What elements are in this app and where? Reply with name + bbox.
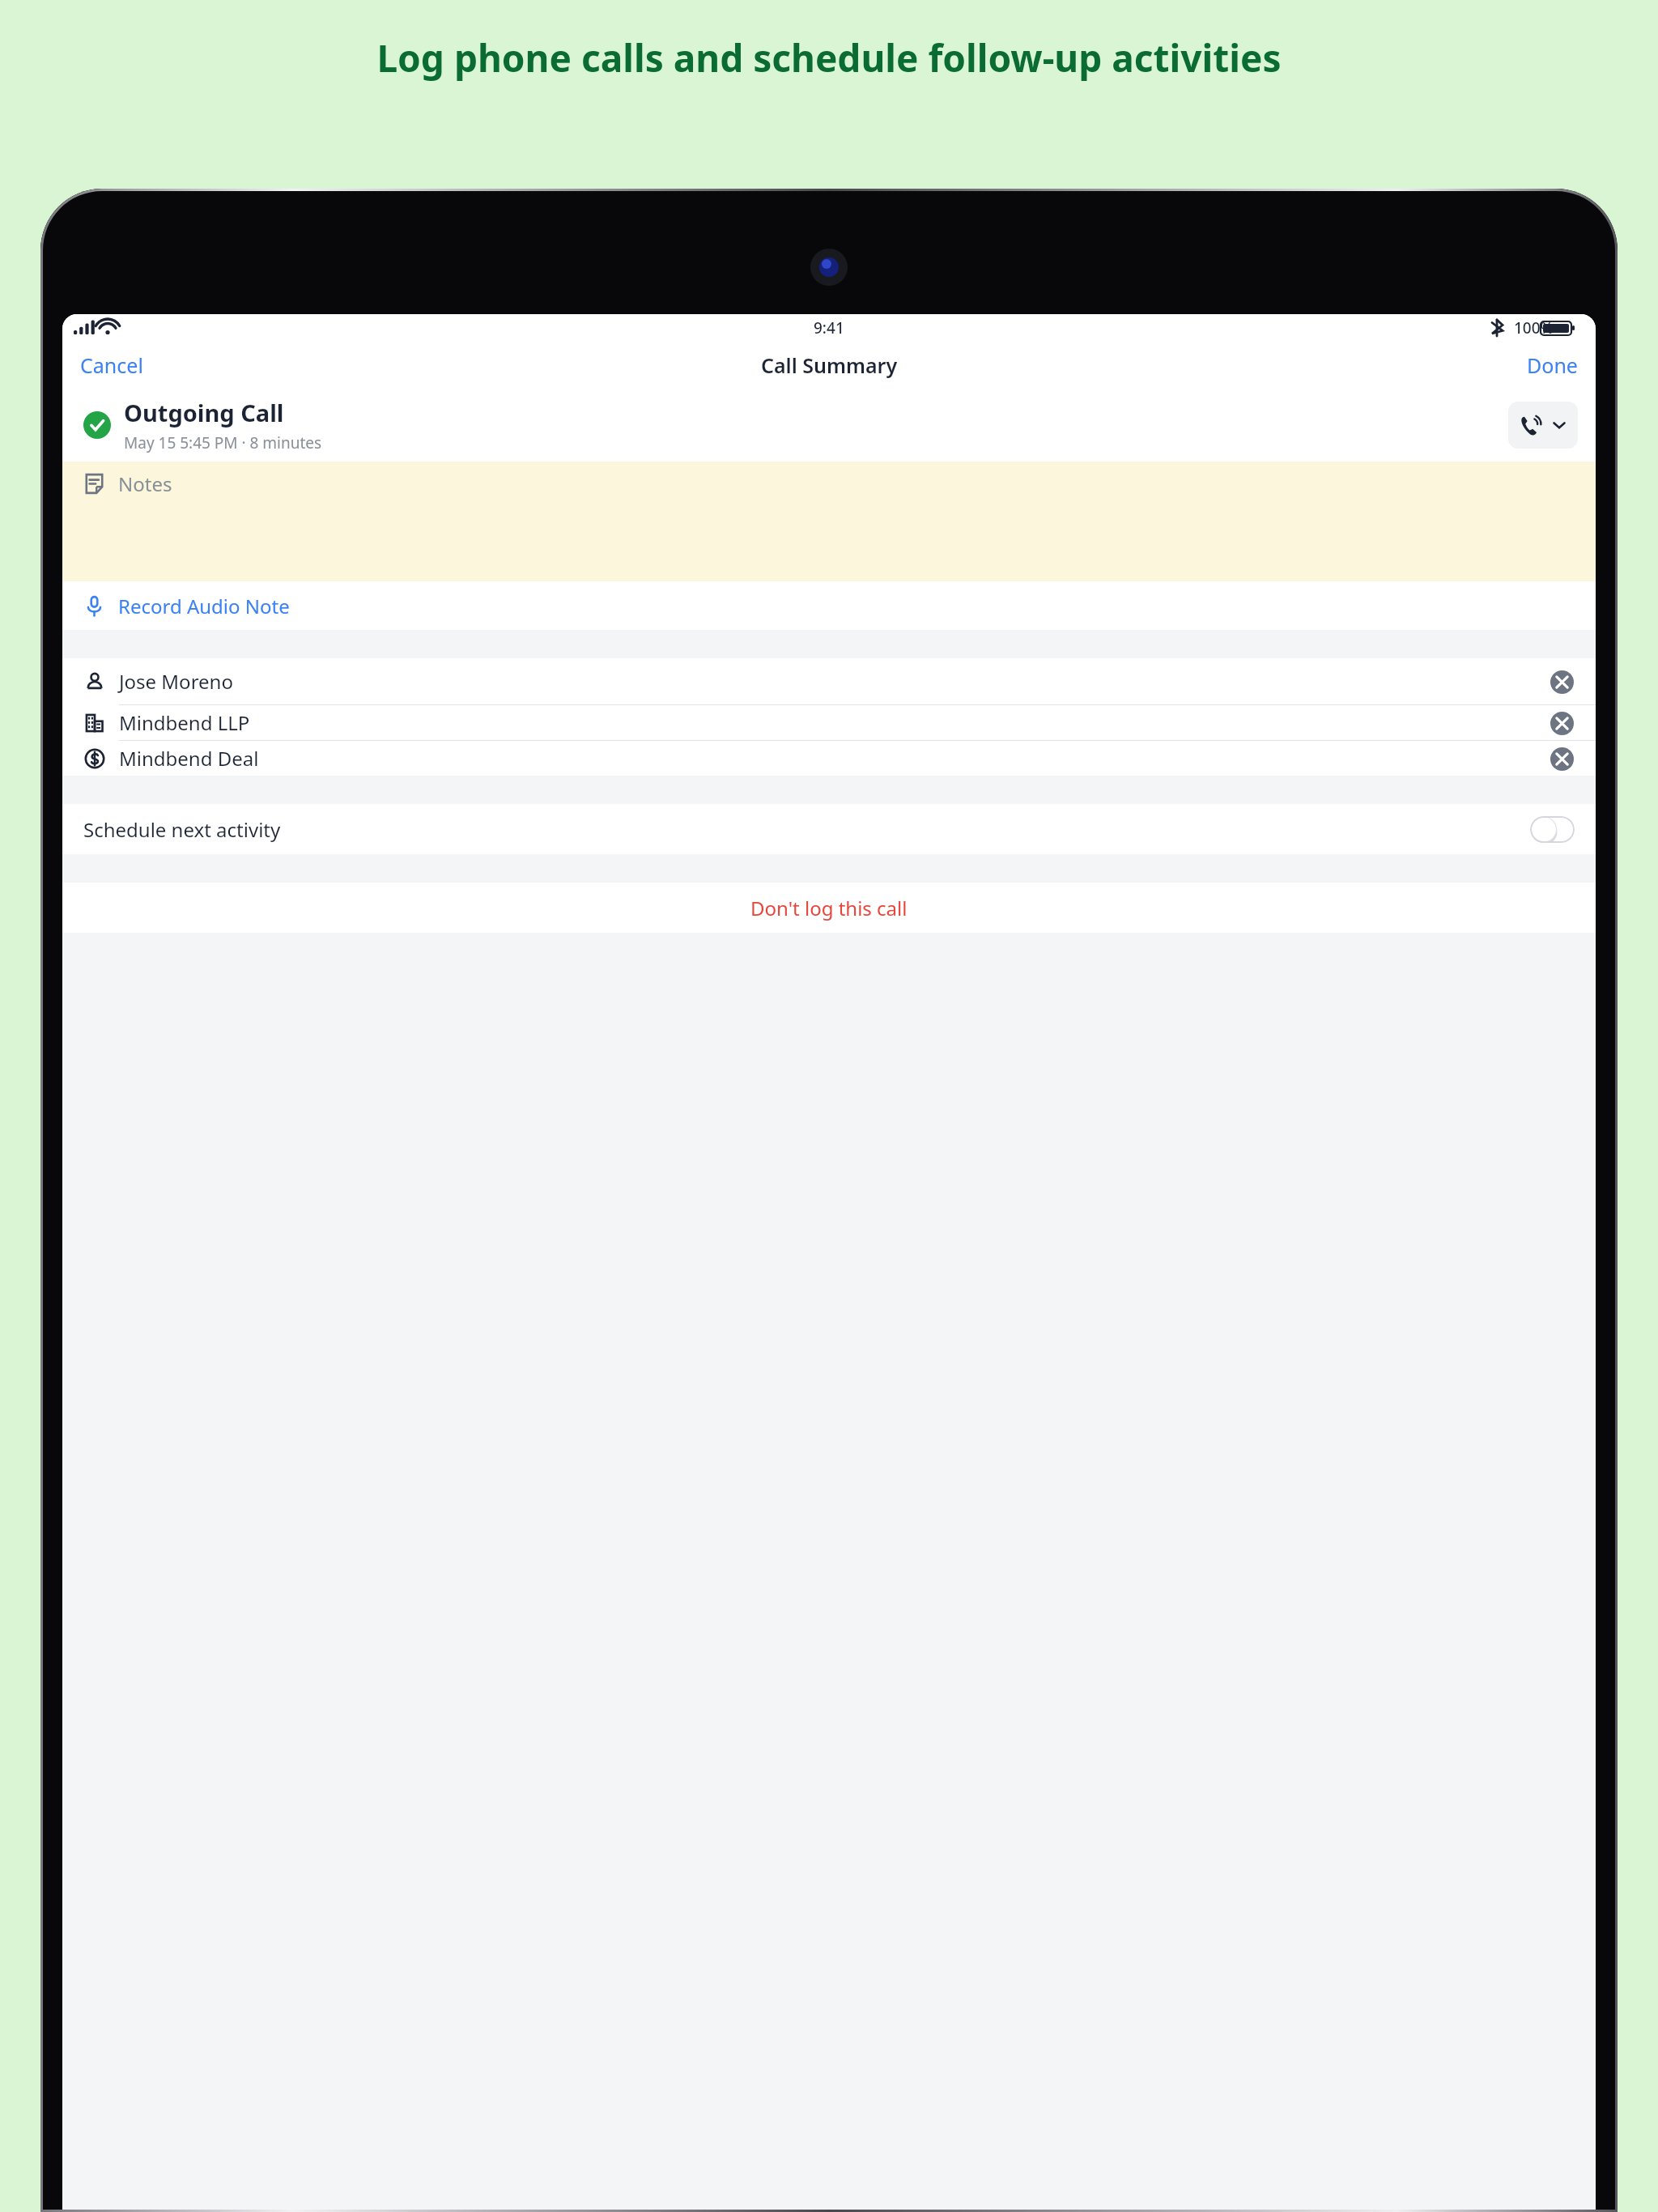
button[interactable]: Don't log this call: [62, 883, 1596, 933]
staticText: Call Summary: [761, 351, 898, 379]
button[interactable]: Jose Moreno: [62, 658, 1596, 704]
staticText: Outgoing Call: [124, 397, 284, 428]
staticText: Notes: [118, 470, 172, 497]
button[interactable]: Schedule next activity: [62, 804, 1596, 854]
button[interactable]: Remove Mindbend Deal: [1549, 746, 1575, 772]
button[interactable]: Mindbend Deal: [62, 741, 1596, 776]
staticText: Don't log this call: [750, 895, 908, 921]
button[interactable]: Record Audio Note: [62, 581, 1596, 630]
staticText: Mindbend LLP: [119, 709, 250, 736]
staticText: May 15 5:45 PM · 8 minutes: [124, 432, 322, 453]
staticText: Cancel: [80, 351, 143, 379]
button[interactable]: Notes: [62, 462, 1596, 505]
button[interactable]: Done: [1509, 343, 1596, 387]
button[interactable]: Call type: Outgoing Call: [1508, 402, 1578, 449]
staticText: Log phone calls and schedule follow-up a…: [0, 32, 1658, 83]
button[interactable]: Cancel: [62, 343, 161, 387]
staticText: Record Audio Note: [118, 593, 290, 619]
staticText: Done: [1527, 351, 1578, 379]
staticText: Mindbend Deal: [119, 745, 259, 772]
staticText: Jose Moreno: [119, 668, 233, 695]
button[interactable]: Remove Jose Moreno: [1549, 669, 1575, 695]
button[interactable]: Mindbend LLP: [62, 705, 1596, 740]
staticText: 100%: [1514, 317, 1554, 338]
staticText: 9:41: [814, 317, 844, 338]
staticText: Schedule next activity: [83, 816, 281, 843]
button[interactable]: Remove Mindbend LLP: [1549, 710, 1575, 736]
